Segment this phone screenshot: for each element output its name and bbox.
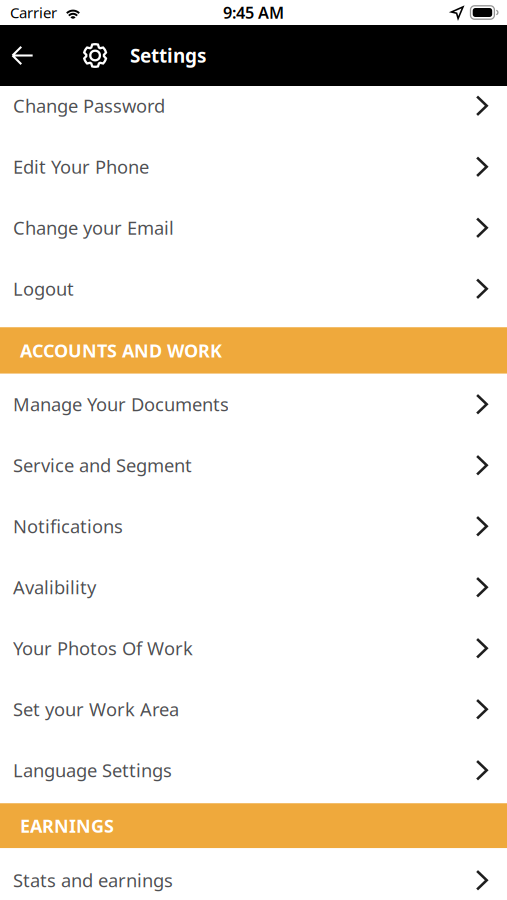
- staticText: Notifications: [13, 514, 123, 539]
- button[interactable]: Back: [12, 25, 34, 86]
- button[interactable]: Service and Segment: [0, 435, 507, 496]
- staticText: Settings: [130, 43, 207, 68]
- button[interactable]: Logout: [0, 258, 507, 319]
- staticText: Logout: [13, 276, 74, 301]
- button[interactable]: Change your Email: [0, 197, 507, 258]
- button[interactable]: Stats and earnings: [0, 850, 507, 900]
- staticText: Change Password: [13, 93, 165, 118]
- staticText: Your Photos Of Work: [13, 636, 193, 661]
- staticText: Edit Your Phone: [13, 154, 149, 179]
- button[interactable]: Edit Your Phone: [0, 136, 507, 197]
- button[interactable]: Set your Work Area: [0, 679, 507, 740]
- staticText: Avalibility: [13, 575, 96, 600]
- staticText: 9:45 AM: [223, 1, 284, 24]
- button[interactable]: Notifications: [0, 496, 507, 557]
- button[interactable]: Language Settings: [0, 740, 507, 801]
- button[interactable]: Manage Your Documents: [0, 374, 507, 435]
- staticText: Change your Email: [13, 215, 174, 240]
- staticText: Manage Your Documents: [13, 392, 229, 417]
- button[interactable]: Avalibility: [0, 557, 507, 618]
- staticText: ACCOUNTS AND WORK: [20, 338, 222, 363]
- staticText: Carrier: [10, 2, 57, 23]
- staticText: EARNINGS: [20, 813, 114, 838]
- staticText: Set your Work Area: [13, 697, 179, 722]
- staticText: Service and Segment: [13, 453, 192, 478]
- button[interactable]: Your Photos Of Work: [0, 618, 507, 679]
- button[interactable]: Change Password: [0, 75, 507, 136]
- staticText: Language Settings: [13, 758, 172, 783]
- staticText: Stats and earnings: [13, 868, 173, 893]
